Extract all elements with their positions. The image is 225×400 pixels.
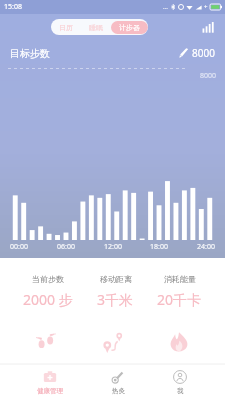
staticText: 8000 xyxy=(192,46,215,60)
staticText: + xyxy=(204,3,208,11)
button[interactable]: 睡眠 xyxy=(81,21,111,34)
button[interactable]: Steps xyxy=(26,323,66,363)
staticText: 日历 xyxy=(59,23,73,32)
staticText: 健康管理 xyxy=(37,387,63,395)
staticText: 3千米 xyxy=(97,290,134,309)
button[interactable]: Statistics xyxy=(199,18,217,36)
other: Edit goal xyxy=(179,48,189,58)
staticText: 00:00 xyxy=(10,242,28,252)
button[interactable]: 计步器 xyxy=(111,21,148,34)
staticText: 睡眠 xyxy=(89,23,103,32)
button[interactable]: Distance xyxy=(93,323,133,363)
staticText: 8000 xyxy=(200,71,217,81)
staticText: 我 xyxy=(177,387,184,395)
staticText: 2000 步 xyxy=(23,290,73,309)
staticText: 24:00 xyxy=(197,242,215,252)
staticText: 当前步数 xyxy=(32,274,64,284)
staticText: 消耗能量 xyxy=(164,274,196,284)
button[interactable]: 健康管理 xyxy=(27,366,73,398)
staticText: 移动距离 xyxy=(100,274,132,284)
staticText: 目标步数 xyxy=(10,47,50,60)
button[interactable]: Calories xyxy=(159,323,199,363)
staticText: 热灸 xyxy=(112,387,125,395)
staticText: 06:00 xyxy=(57,242,75,252)
button[interactable]: Edit goal xyxy=(179,46,215,60)
staticText: 18:00 xyxy=(150,242,168,252)
staticText: 20千卡 xyxy=(157,290,202,309)
staticText: ... xyxy=(163,3,168,11)
button[interactable]: 热灸 xyxy=(100,366,136,398)
button[interactable]: 我 xyxy=(162,366,198,398)
staticText: 12:00 xyxy=(104,242,122,252)
staticText: 15:08 xyxy=(4,2,22,12)
button[interactable]: 日历 xyxy=(51,21,81,34)
staticText: 计步器 xyxy=(119,23,140,32)
